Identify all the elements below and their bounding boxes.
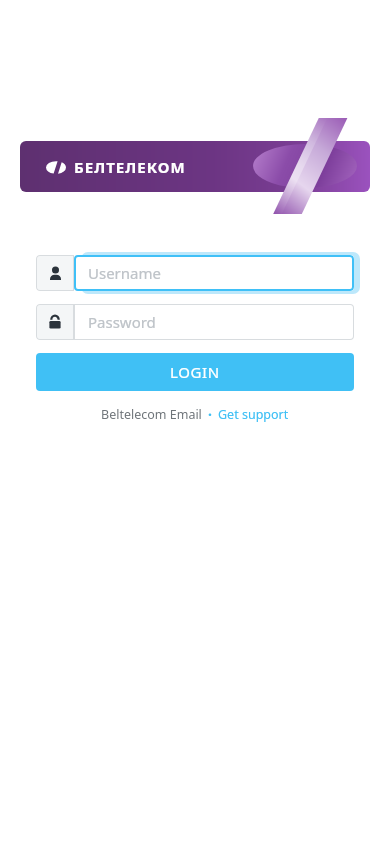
staticText: Password	[88, 312, 156, 332]
staticText: LOGIN	[170, 362, 220, 382]
button[interactable]: Field icon	[36, 304, 354, 340]
other: Field icon	[36, 255, 74, 291]
button[interactable]: LOGIN	[36, 353, 354, 391]
staticText: Beltelecom Email	[101, 406, 202, 423]
staticText: БЕЛТЕЛЕКОМ	[74, 157, 186, 177]
button[interactable]: Get support	[218, 406, 289, 423]
staticText: ·	[208, 405, 212, 424]
staticText: Get support	[218, 406, 289, 423]
button[interactable]: Beltelecom Email	[101, 406, 202, 423]
other: Field icon	[36, 304, 74, 340]
staticText: Username	[88, 263, 161, 283]
button[interactable]: Field icon	[36, 255, 354, 291]
